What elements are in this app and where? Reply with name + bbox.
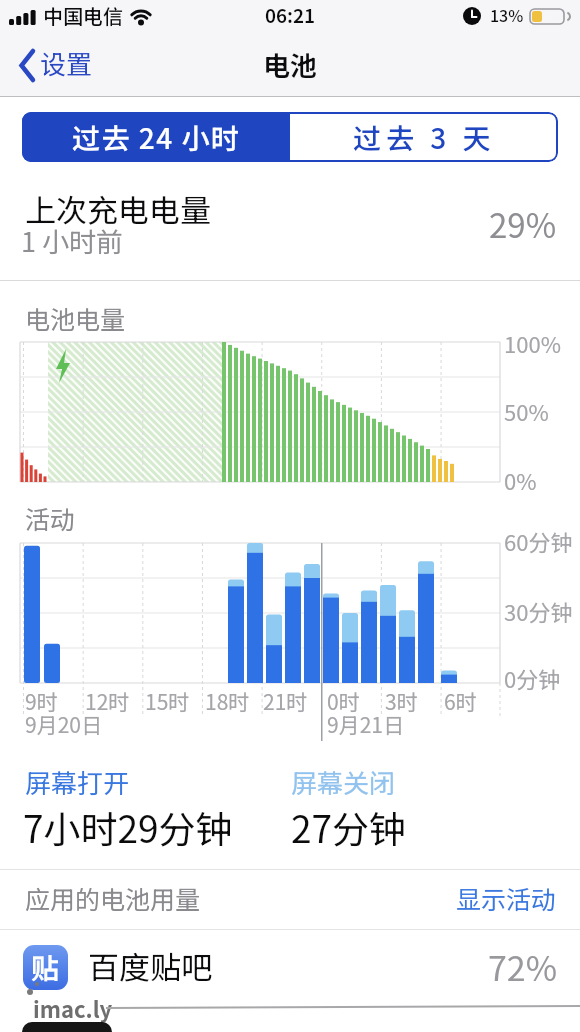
staticText: 9月20日	[25, 709, 102, 739]
staticText: 100%	[504, 327, 561, 359]
staticText: 贴	[31, 947, 60, 988]
staticText: 29%	[489, 200, 557, 248]
staticText: 0时	[327, 686, 360, 716]
staticText: 50%	[504, 395, 549, 427]
staticText: 30分钟	[504, 595, 573, 627]
button[interactable]: 设置	[20, 44, 130, 90]
staticText: 9时	[25, 686, 58, 716]
staticText: 3时	[385, 686, 418, 716]
staticText: 06:21	[265, 1, 315, 29]
staticText: 7小时29分钟	[23, 800, 233, 854]
staticText: 13%	[490, 3, 524, 26]
staticText: 27分钟	[291, 800, 407, 854]
staticText: 过去 3 天	[353, 117, 496, 158]
button[interactable]	[0, 930, 580, 1002]
staticText: 显示活动	[456, 880, 557, 916]
staticText: 15时	[145, 686, 190, 716]
staticText: 60分钟	[504, 525, 573, 557]
staticText: 上次充电电量	[25, 186, 211, 231]
staticText: 18时	[205, 686, 250, 716]
staticText: imac.ly	[33, 992, 113, 1024]
staticText: 1 小时前	[21, 221, 124, 260]
staticText: 电池	[263, 45, 317, 84]
staticText: 屏幕打开	[25, 763, 130, 801]
staticText: 设置	[40, 44, 93, 82]
staticText: 0%	[504, 464, 537, 496]
staticText: 应用的电池用量	[25, 880, 201, 916]
button[interactable]	[440, 878, 560, 916]
button[interactable]: 过去 3 天	[290, 112, 558, 162]
button[interactable]	[23, 764, 253, 848]
staticText: 电池电量	[25, 300, 126, 336]
button[interactable]: 过去 24 小时	[22, 112, 290, 162]
staticText: 12时	[85, 686, 130, 716]
staticText: 屏幕关闭	[291, 763, 396, 801]
staticText: 9月21日	[327, 709, 404, 739]
staticText: 21时	[263, 686, 308, 716]
staticText: 中国电信	[43, 1, 123, 30]
staticText: 6时	[444, 686, 477, 716]
staticText: 活动	[25, 500, 76, 536]
staticText: 0分钟	[504, 662, 561, 694]
staticText: 72%	[488, 942, 558, 991]
staticText: 过去 24 小时	[72, 117, 241, 158]
staticText: 百度贴吧	[88, 943, 212, 988]
